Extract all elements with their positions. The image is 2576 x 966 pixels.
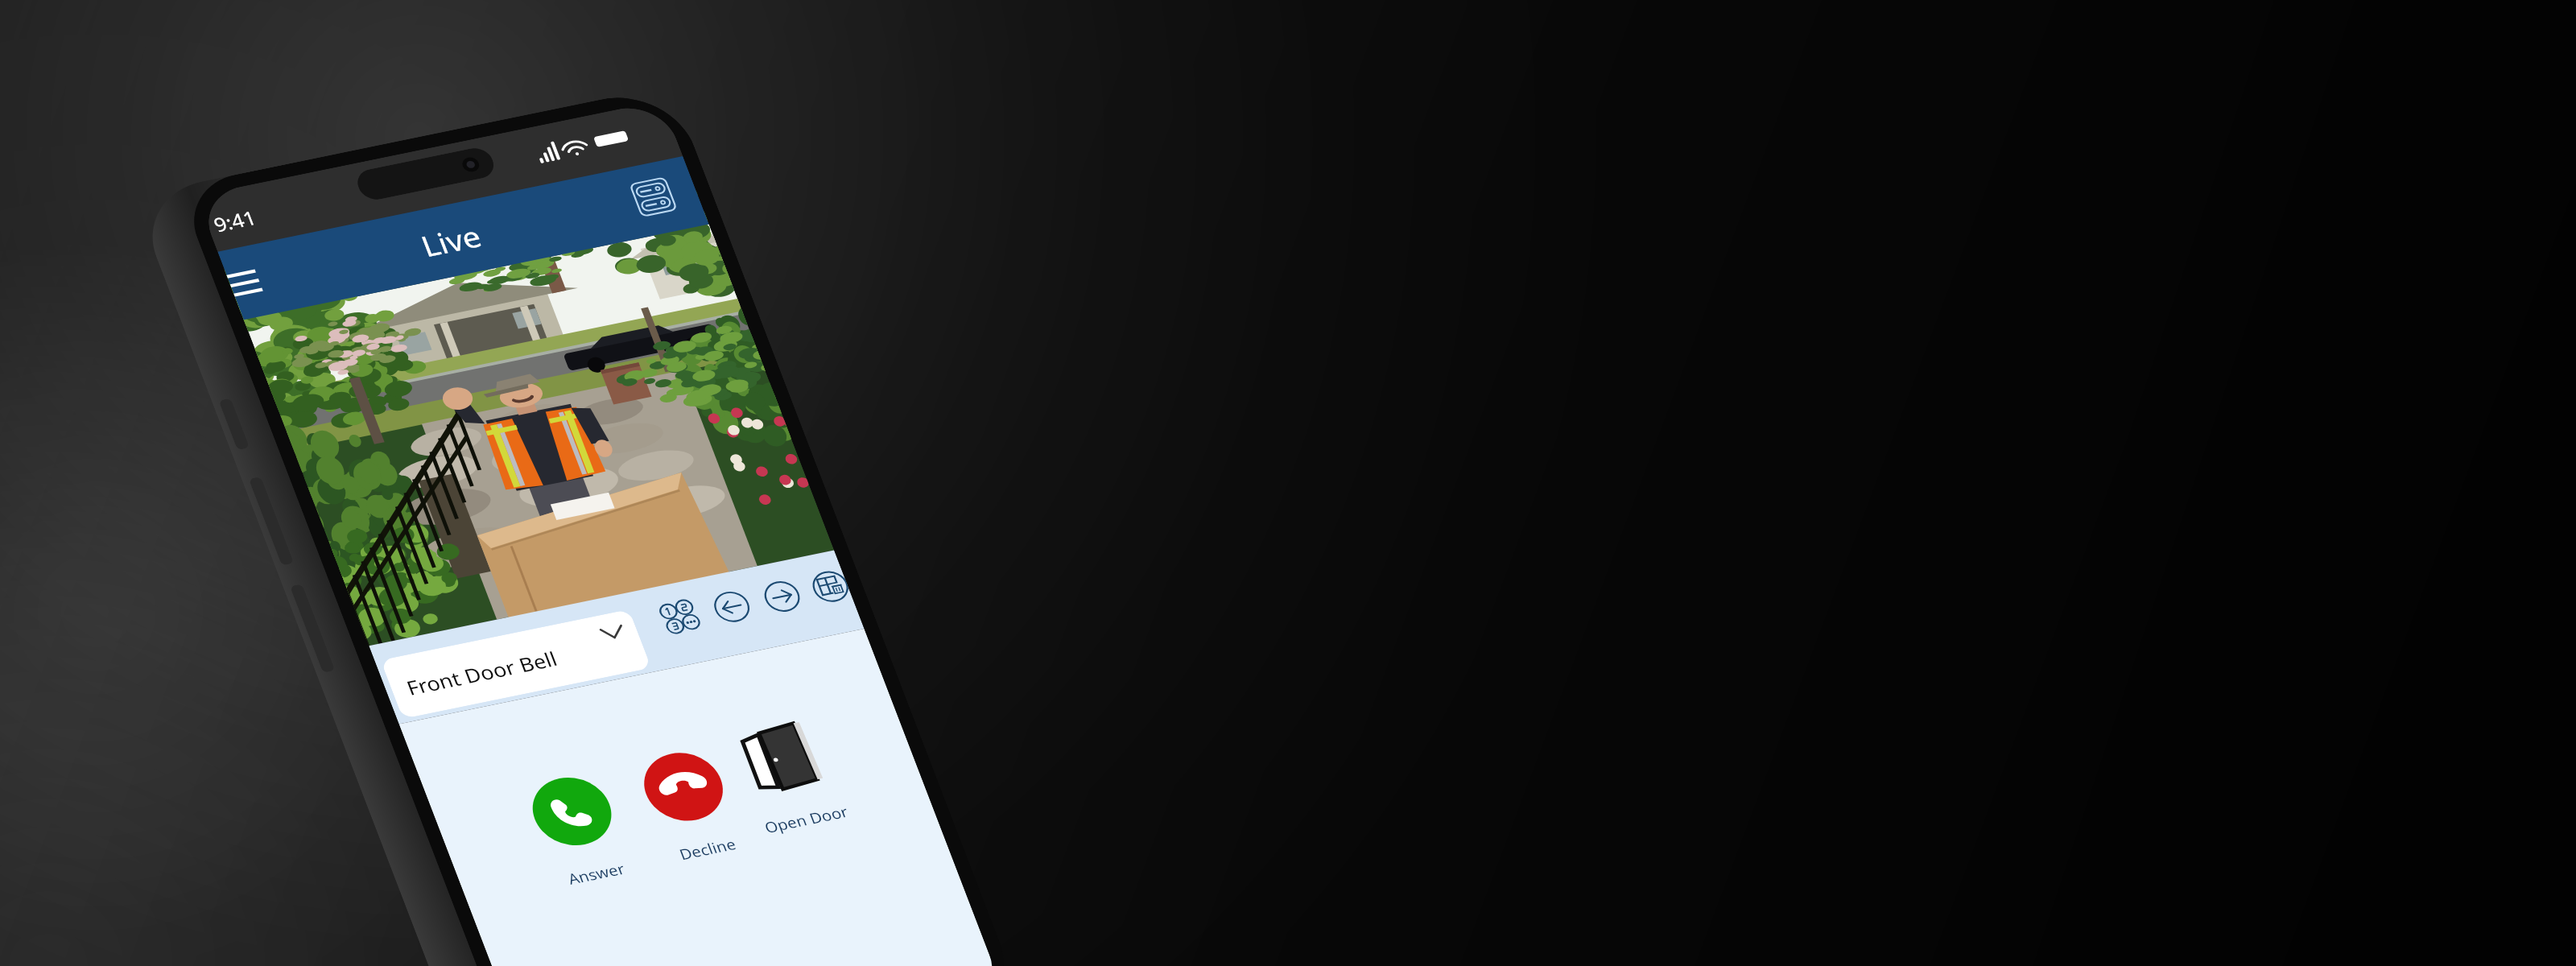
button[interactable]: Layout (800, 559, 860, 614)
button[interactable]: Devices (619, 165, 688, 228)
staticText: Live (406, 201, 496, 280)
staticText: Open Door (757, 780, 856, 859)
button[interactable]: Menu (218, 255, 278, 309)
staticText: Answer (560, 844, 632, 903)
button[interactable]: Next (751, 569, 813, 624)
button[interactable]: Open Door (691, 686, 889, 870)
staticText: Decline (672, 819, 744, 879)
button[interactable]: Answer (480, 739, 680, 925)
button[interactable]: Decline (591, 714, 791, 900)
button[interactable]: Front Door Bell (366, 544, 666, 784)
button[interactable]: Previous (701, 579, 762, 635)
staticText: 9:41 (204, 194, 266, 248)
staticText: Front Door Bell (396, 606, 567, 740)
button[interactable]: Keypad (650, 590, 711, 645)
